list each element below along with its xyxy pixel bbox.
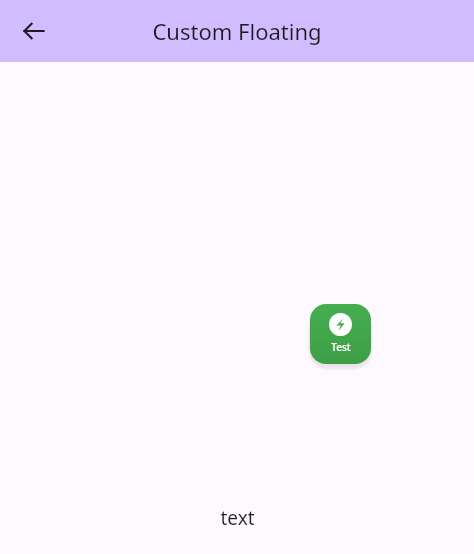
button[interactable]: Test xyxy=(310,304,371,364)
staticText: Test xyxy=(331,340,351,354)
staticText: Custom Floating xyxy=(152,16,322,46)
staticText: text xyxy=(220,505,255,531)
button[interactable]: Back xyxy=(10,7,58,55)
